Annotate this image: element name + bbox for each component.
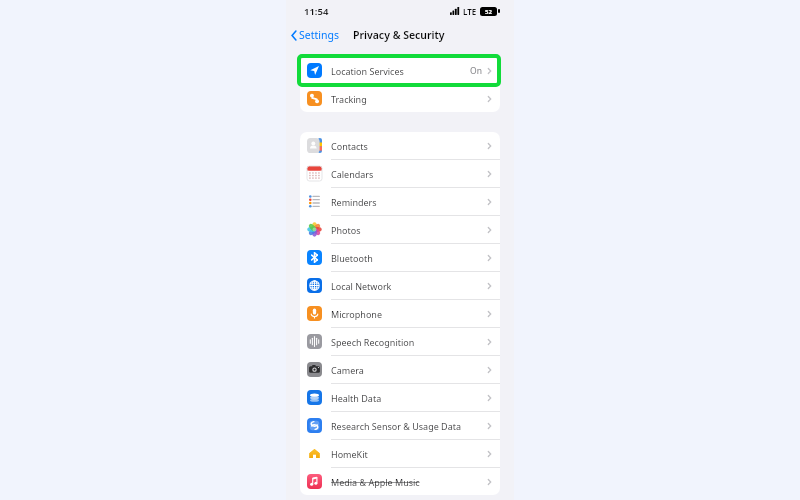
staticText: Contacts — [331, 140, 368, 152]
button[interactable]: Bluetooth — [300, 244, 500, 272]
button[interactable]: Settings — [286, 28, 343, 42]
button[interactable]: Tracking — [300, 85, 500, 112]
button[interactable]: Local Network — [300, 272, 500, 300]
button[interactable]: Reminders — [300, 188, 500, 216]
button[interactable]: Research Sensor & Usage Data — [300, 412, 500, 440]
button[interactable]: Media & Apple Music — [300, 468, 500, 495]
button[interactable]: Contacts — [300, 132, 500, 160]
staticText: Bluetooth — [331, 252, 373, 264]
staticText: LTE — [463, 6, 477, 17]
button[interactable]: Camera — [300, 356, 500, 384]
button[interactable]: Location Services — [300, 57, 500, 85]
button[interactable]: Health Data — [300, 384, 500, 412]
staticText: On — [470, 65, 482, 77]
staticText: Speech Recognition — [331, 336, 415, 348]
staticText: Camera — [331, 364, 364, 376]
staticText: Photos — [331, 224, 361, 236]
staticText: Media & Apple Music — [331, 476, 420, 488]
button[interactable]: Microphone — [300, 300, 500, 328]
staticText: 11:54 — [304, 5, 329, 18]
staticText: Calendars — [331, 168, 374, 180]
staticText: Microphone — [331, 308, 382, 320]
staticText: Research Sensor & Usage Data — [331, 420, 461, 432]
button[interactable]: Photos — [300, 216, 500, 244]
button[interactable]: HomeKit — [300, 440, 500, 468]
staticText: Health Data — [331, 392, 382, 404]
staticText: Privacy & Security — [353, 28, 445, 42]
staticText: Settings — [299, 28, 339, 42]
staticText: Local Network — [331, 280, 392, 292]
staticText: Tracking — [331, 93, 367, 105]
staticText: Reminders — [331, 196, 377, 208]
staticText: Location Services — [331, 65, 404, 77]
staticText: 52 — [485, 8, 492, 16]
button[interactable]: Calendars — [300, 160, 500, 188]
staticText: HomeKit — [331, 448, 368, 460]
button[interactable]: Speech Recognition — [300, 328, 500, 356]
